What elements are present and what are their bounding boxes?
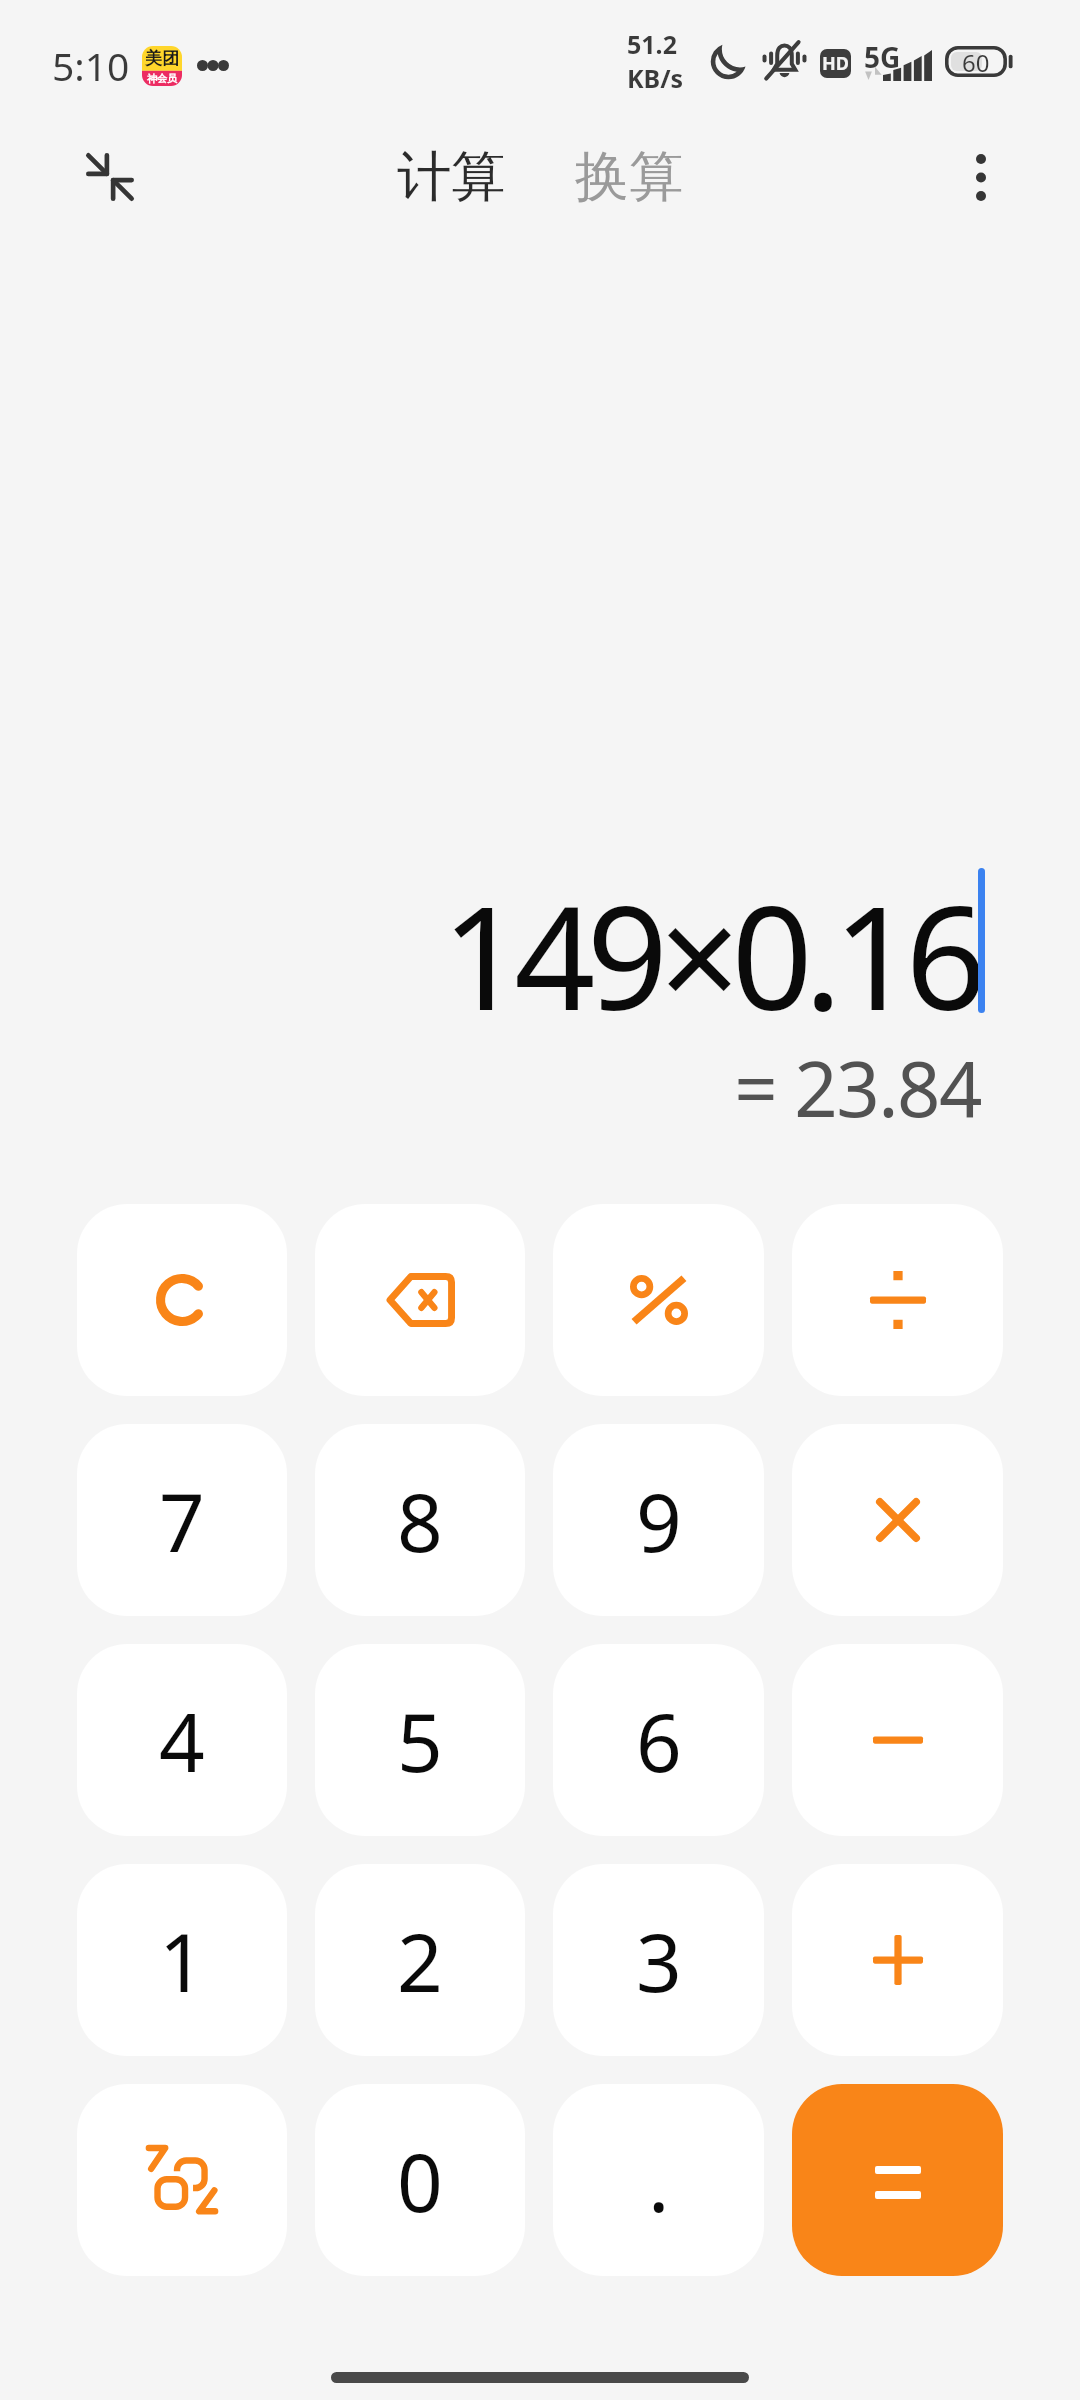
staticText: HD: [822, 51, 849, 76]
button[interactable]: More options: [931, 127, 1031, 227]
staticText: 神会员: [147, 72, 177, 85]
staticText: 9: [636, 1466, 682, 1575]
button[interactable]: 5: [315, 1644, 525, 1836]
staticText: 51.2: [627, 27, 677, 61]
button[interactable]: Collapse: [55, 122, 165, 232]
button[interactable]: Unit conversion: [77, 2084, 287, 2276]
button[interactable]: Plus: [792, 1864, 1003, 2056]
button[interactable]: Percent: [553, 1204, 764, 1396]
staticText: 8: [397, 1466, 443, 1575]
staticText: 计算: [397, 143, 505, 211]
staticText: 149×0.16: [441, 858, 978, 1051]
button[interactable]: 8: [315, 1424, 525, 1616]
button[interactable]: Divide: [792, 1204, 1003, 1396]
button[interactable]: Minus: [792, 1644, 1003, 1836]
staticText: 5: [397, 1686, 443, 1795]
button[interactable]: Equals: [792, 2084, 1003, 2276]
staticText: 3: [636, 1906, 682, 2015]
staticText: 5:10: [52, 39, 130, 92]
button[interactable]: 0: [315, 2084, 525, 2276]
staticText: 5G: [864, 38, 901, 76]
staticText: KB/s: [627, 61, 684, 95]
staticText: 6: [636, 1686, 682, 1795]
staticText: = 23.84: [734, 1036, 981, 1140]
button[interactable]: 4: [77, 1644, 287, 1836]
button[interactable]: 换算: [561, 131, 697, 223]
staticText: 美团: [145, 48, 179, 69]
button[interactable]: 9: [553, 1424, 764, 1616]
button[interactable]: Multiply: [792, 1424, 1003, 1616]
staticText: .: [648, 2126, 670, 2235]
button[interactable]: 6: [553, 1644, 764, 1836]
button[interactable]: 7: [77, 1424, 287, 1616]
button[interactable]: 1: [77, 1864, 287, 2056]
staticText: 7: [159, 1466, 205, 1575]
staticText: 换算: [575, 143, 683, 211]
button[interactable]: Backspace: [315, 1204, 525, 1396]
staticText: 4: [159, 1686, 205, 1795]
button[interactable]: 计算: [383, 131, 519, 223]
staticText: 0: [397, 2126, 443, 2235]
button[interactable]: 3: [553, 1864, 764, 2056]
staticText: 60: [962, 46, 990, 77]
button[interactable]: Clear: [77, 1204, 287, 1396]
staticText: 1: [159, 1906, 205, 2015]
button[interactable]: .: [553, 2084, 764, 2276]
button[interactable]: 2: [315, 1864, 525, 2056]
staticText: 2: [397, 1906, 443, 2015]
